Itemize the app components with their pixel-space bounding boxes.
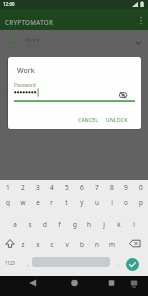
staticText: 9 bbox=[124, 183, 128, 192]
button[interactable]: s bbox=[22, 215, 37, 233]
staticText: m bbox=[109, 240, 115, 249]
button[interactable]: f bbox=[52, 215, 67, 233]
staticText: 12:00 bbox=[3, 1, 15, 7]
staticText: 6 bbox=[80, 183, 84, 192]
button[interactable] bbox=[50, 276, 99, 296]
button[interactable]: 7 bbox=[89, 178, 104, 196]
staticText: k bbox=[117, 220, 121, 229]
button[interactable]: h bbox=[81, 215, 96, 233]
staticText: 2 bbox=[21, 183, 25, 192]
staticText: CRYPTOMATOR bbox=[5, 18, 54, 26]
staticText: Password bbox=[14, 82, 36, 89]
button[interactable]: ?123 bbox=[2, 254, 17, 272]
button[interactable] bbox=[99, 276, 148, 296]
button[interactable]: d bbox=[37, 215, 52, 233]
staticText: , bbox=[27, 260, 29, 267]
staticText: h bbox=[87, 220, 91, 229]
button[interactable]: 1 bbox=[0, 178, 15, 196]
staticText: t bbox=[65, 198, 68, 207]
button[interactable]: Work bbox=[0, 30, 148, 53]
staticText: CANCEL bbox=[78, 117, 99, 124]
staticText: j bbox=[103, 220, 105, 229]
button[interactable] bbox=[136, 13, 146, 27]
button[interactable]: r bbox=[44, 193, 59, 211]
staticText: ?123 bbox=[5, 260, 15, 266]
staticText: 0 bbox=[139, 183, 143, 192]
staticText: r bbox=[50, 198, 53, 207]
button[interactable]: p bbox=[133, 193, 148, 211]
staticText: x bbox=[36, 240, 40, 249]
button[interactable]: x bbox=[30, 235, 45, 253]
staticText: q bbox=[6, 198, 10, 207]
staticText: 8 bbox=[110, 183, 114, 192]
button[interactable]: CANCEL bbox=[76, 115, 101, 126]
staticText: p bbox=[139, 198, 143, 207]
staticText: c bbox=[50, 240, 54, 249]
staticText: s bbox=[28, 220, 32, 229]
staticText: g bbox=[73, 220, 77, 229]
button[interactable]: 5 bbox=[59, 178, 74, 196]
button[interactable]: 3 bbox=[30, 178, 45, 196]
staticText: d bbox=[43, 220, 47, 229]
button[interactable]: g bbox=[67, 215, 82, 233]
button[interactable]: a bbox=[7, 215, 22, 233]
button[interactable]: o bbox=[118, 193, 133, 211]
button[interactable]: UNLOCK bbox=[104, 115, 130, 126]
staticText: i bbox=[111, 198, 113, 207]
button[interactable]: q bbox=[0, 193, 15, 211]
staticText: Work bbox=[25, 36, 40, 44]
staticText: o bbox=[124, 198, 128, 207]
staticText: w bbox=[20, 198, 26, 207]
button[interactable]: 9 bbox=[118, 178, 133, 196]
staticText: a bbox=[13, 220, 17, 229]
staticText: z bbox=[21, 240, 25, 249]
staticText: Work bbox=[17, 66, 35, 76]
button[interactable]: e bbox=[30, 193, 45, 211]
staticText: 3 bbox=[36, 183, 40, 192]
button[interactable]: u bbox=[89, 193, 104, 211]
button[interactable]: j bbox=[96, 215, 111, 233]
button[interactable]: i bbox=[104, 193, 119, 211]
button[interactable]: 0 bbox=[133, 178, 148, 196]
staticText: 7 bbox=[95, 183, 99, 192]
button[interactable]: , bbox=[20, 254, 35, 272]
button[interactable]: v bbox=[59, 235, 74, 253]
staticText: u bbox=[95, 198, 99, 207]
button[interactable]: b bbox=[74, 235, 89, 253]
button[interactable] bbox=[0, 276, 50, 296]
button[interactable]: 8 bbox=[104, 178, 119, 196]
button[interactable]: m bbox=[104, 235, 119, 253]
staticText: y bbox=[80, 198, 84, 207]
staticText: b bbox=[80, 240, 84, 249]
staticText: v bbox=[65, 240, 69, 249]
staticText: 5 bbox=[65, 183, 69, 192]
button[interactable]: 2 bbox=[15, 178, 30, 196]
staticText: 1 bbox=[6, 183, 10, 192]
button[interactable]: 6 bbox=[74, 178, 89, 196]
button[interactable]: 4 bbox=[44, 178, 59, 196]
staticText: 4 bbox=[50, 183, 54, 192]
staticText: . bbox=[117, 260, 119, 267]
button[interactable]: c bbox=[44, 235, 59, 253]
staticText: UNLOCK bbox=[106, 117, 128, 124]
staticText: e bbox=[36, 198, 40, 207]
staticText: n bbox=[95, 240, 99, 249]
staticText: f bbox=[58, 220, 61, 229]
button[interactable]: l bbox=[126, 215, 141, 233]
staticText: l bbox=[133, 220, 135, 229]
button[interactable]: t bbox=[59, 193, 74, 211]
button[interactable] bbox=[126, 258, 139, 271]
button[interactable]: z bbox=[15, 235, 30, 253]
button[interactable]: n bbox=[89, 235, 104, 253]
button[interactable]: y bbox=[74, 193, 89, 211]
button[interactable]: k bbox=[111, 215, 126, 233]
button[interactable]: w bbox=[15, 193, 30, 211]
